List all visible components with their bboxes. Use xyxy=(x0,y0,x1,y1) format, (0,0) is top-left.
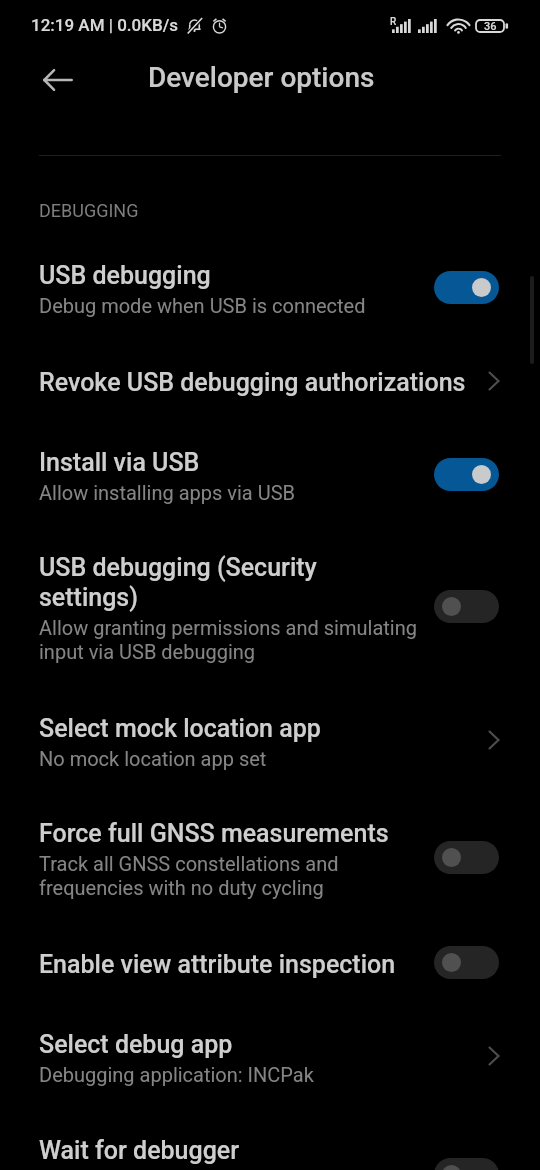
staticText: 12:19 AM | 0.0KB/s xyxy=(31,15,179,35)
staticText: USB debugging xyxy=(39,261,211,290)
button[interactable]: USB debugging (Security settings) xyxy=(0,529,540,688)
staticText: Developer options xyxy=(148,61,375,94)
button[interactable]: Open xyxy=(477,1039,511,1073)
button[interactable]: Wait for debugger xyxy=(0,1111,540,1170)
staticText: Debugging application: INCPak xyxy=(39,1063,314,1086)
button[interactable]: Open xyxy=(477,364,511,398)
staticText: Install via USB xyxy=(39,448,200,477)
button[interactable]: Back xyxy=(34,56,82,104)
staticText: Allow granting permissions and simulatin… xyxy=(39,616,420,664)
staticText: 36 xyxy=(484,20,497,33)
button[interactable]: Switch on xyxy=(434,271,499,304)
staticText: R xyxy=(390,16,397,28)
button[interactable]: Force full GNSS measurements xyxy=(0,795,540,924)
button[interactable]: Enable view attribute inspection xyxy=(0,924,540,1004)
button[interactable]: USB debugging xyxy=(0,236,540,342)
button[interactable]: Switch off xyxy=(434,946,499,979)
button[interactable]: Select mock location app xyxy=(0,688,540,795)
staticText: Enable view attribute inspection xyxy=(39,950,396,979)
staticText: Wait for debugger xyxy=(39,1136,240,1165)
staticText: DEBUGGING xyxy=(39,200,139,221)
button[interactable]: Switch off xyxy=(434,841,499,874)
staticText: USB debugging (Security settings) xyxy=(39,553,420,612)
staticText: Track all GNSS constellations and freque… xyxy=(39,852,420,900)
button[interactable]: Open xyxy=(477,723,511,757)
staticText: Force full GNSS measurements xyxy=(39,819,389,848)
button[interactable]: Revoke USB debugging authorizations xyxy=(0,342,540,423)
button[interactable]: Switch on xyxy=(434,458,499,491)
staticText: No mock location app set xyxy=(39,747,267,770)
button[interactable]: Install via USB xyxy=(0,423,540,529)
button[interactable]: Switch off xyxy=(434,590,499,623)
staticText: Revoke USB debugging authorizations xyxy=(39,368,466,397)
staticText: Select debug app xyxy=(39,1030,233,1059)
button[interactable]: Switch off xyxy=(434,1158,499,1170)
staticText: Select mock location app xyxy=(39,714,321,743)
button[interactable]: Select debug app xyxy=(0,1004,540,1111)
staticText: Allow installing apps via USB xyxy=(39,481,295,504)
staticText: Debug mode when USB is connected xyxy=(39,294,366,317)
